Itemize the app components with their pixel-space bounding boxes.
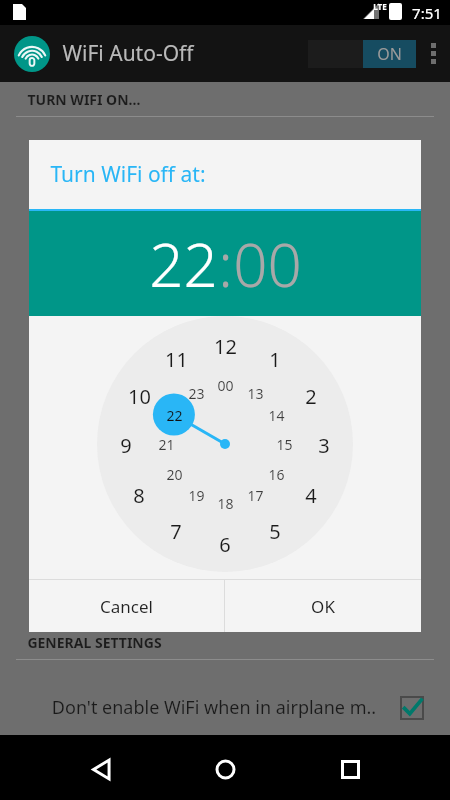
staticText: 12 xyxy=(214,333,237,357)
staticText: 5 xyxy=(269,518,281,542)
staticText: 4 xyxy=(305,482,317,506)
staticText: 13 xyxy=(247,384,264,403)
button[interactable]: Don't enable WiFi when in airplane m.. xyxy=(0,680,450,735)
staticText: Don't enable WiFi when in airplane m.. xyxy=(27,695,401,720)
button[interactable]: 15 xyxy=(266,432,302,456)
staticText: 22 xyxy=(149,223,218,305)
button[interactable]: 22 xyxy=(149,223,218,305)
button[interactable]: 9 xyxy=(108,432,144,456)
button[interactable]: 7 xyxy=(158,518,194,542)
staticText: 18 xyxy=(217,494,234,513)
button[interactable]: 10 xyxy=(121,383,157,407)
button[interactable]: Cancel xyxy=(29,580,224,632)
button[interactable]: Toggle service xyxy=(308,40,416,68)
button[interactable]: 18 xyxy=(207,491,243,515)
staticText: 21 xyxy=(158,435,175,454)
staticText: 14 xyxy=(268,406,285,425)
button[interactable]: More options xyxy=(416,25,450,82)
staticText: 7 xyxy=(170,518,182,542)
staticText: Cancel xyxy=(100,595,153,618)
staticText: ON xyxy=(377,43,402,65)
button[interactable]: 21 xyxy=(148,432,184,456)
staticText: OK xyxy=(311,595,335,618)
button[interactable]: 17 xyxy=(237,483,273,507)
button[interactable]: 6 xyxy=(207,531,243,555)
staticText: 9 xyxy=(120,432,132,456)
button[interactable]: 3 xyxy=(306,432,342,456)
button[interactable]: 23 xyxy=(178,381,214,405)
staticText: 20 xyxy=(166,465,183,484)
button[interactable]: 19 xyxy=(178,483,214,507)
button[interactable]: 22 xyxy=(156,403,192,427)
staticText: 17 xyxy=(247,486,264,505)
staticText: 6 xyxy=(219,531,231,555)
button[interactable]: 20 xyxy=(156,462,192,486)
staticText: 2 xyxy=(305,383,317,407)
staticText: 3 xyxy=(318,432,330,456)
button[interactable]: 12 xyxy=(207,333,243,357)
button[interactable]: 14 xyxy=(258,403,294,427)
button[interactable]: 5 xyxy=(257,518,293,542)
button[interactable]: 16 xyxy=(258,462,294,486)
staticText: 00 xyxy=(217,376,234,395)
staticText: 8 xyxy=(133,482,145,506)
staticText: Turn WiFi off at: xyxy=(50,160,206,189)
button[interactable]: 4 xyxy=(293,482,329,506)
button[interactable]: 2 xyxy=(293,383,329,407)
button[interactable]: Back xyxy=(77,745,125,793)
staticText: GENERAL SETTINGS xyxy=(27,633,162,652)
staticText: 11 xyxy=(165,346,188,370)
button[interactable]: 00 xyxy=(207,373,243,397)
staticText: 00 xyxy=(233,223,302,305)
staticText: WiFi Auto-Off xyxy=(62,39,194,68)
staticText: TURN WIFI ON… xyxy=(27,90,141,109)
staticText: LTE xyxy=(373,1,387,12)
staticText: 22 xyxy=(166,406,183,425)
button[interactable]: Home xyxy=(201,745,249,793)
button[interactable]: 8 xyxy=(121,482,157,506)
staticText: 1 xyxy=(269,346,281,370)
button[interactable]: 11 xyxy=(158,346,194,370)
staticText: : xyxy=(218,223,233,305)
staticText: 16 xyxy=(268,465,285,484)
button[interactable]: 1 xyxy=(257,346,293,370)
staticText: 7:51 xyxy=(412,3,442,23)
staticText: 23 xyxy=(188,384,205,403)
button[interactable]: Recent apps xyxy=(326,745,374,793)
staticText: 19 xyxy=(188,486,205,505)
button[interactable]: OK xyxy=(225,580,421,632)
button[interactable]: 13 xyxy=(237,381,273,405)
button[interactable]: 00 xyxy=(233,223,302,305)
staticText: 15 xyxy=(276,435,293,454)
staticText: 10 xyxy=(128,383,151,407)
